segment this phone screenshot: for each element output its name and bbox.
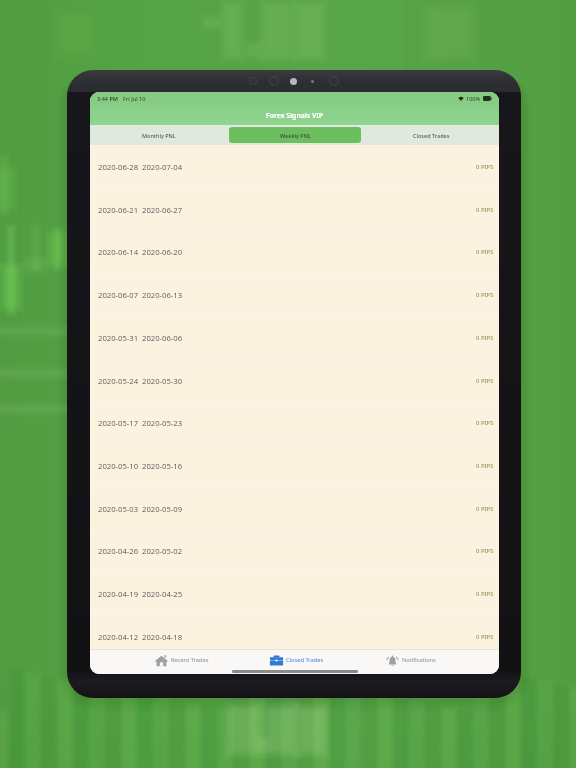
staticText: 2020-04-12 [98, 632, 139, 642]
staticText: 2020-05-09 [142, 504, 183, 514]
staticText: 2020-04-18 [142, 632, 183, 642]
button[interactable]: 2020-05-10 [90, 444, 499, 487]
staticText: 2020-06-07 [98, 290, 139, 300]
button[interactable]: Monthly PNL [92, 127, 225, 143]
button[interactable]: 2020-04-12 [90, 615, 499, 658]
staticText: 2020-05-24 [98, 376, 139, 386]
button[interactable]: Closed Trades [269, 649, 324, 671]
staticText: Fri Jul 10 [123, 95, 146, 102]
staticText: 2020-05-10 [98, 461, 139, 471]
other: Recent Trades [154, 653, 169, 668]
staticText: 2020-06-06 [142, 333, 183, 343]
staticText: 0 PIPS [476, 462, 494, 470]
staticText: Monthly PNL [142, 132, 176, 139]
staticText: 2020-05-31 [98, 333, 139, 343]
button[interactable]: Recent Trades [154, 649, 209, 671]
staticText: 0 PIPS [476, 633, 494, 641]
button[interactable]: 2020-05-03 [90, 487, 499, 530]
staticText: Notifications [402, 656, 436, 664]
staticText: 2020-07-04 [142, 162, 183, 172]
button[interactable]: Closed Trades [365, 127, 497, 143]
staticText: 2020-05-30 [142, 376, 183, 386]
button[interactable]: 2020-05-17 [90, 401, 499, 444]
button[interactable]: 2020-06-28 [90, 145, 499, 188]
staticText: Recent Trades [171, 656, 209, 664]
button[interactable]: 2020-06-14 [90, 230, 499, 273]
button[interactable]: 2020-04-19 [90, 572, 499, 615]
staticText: Forex Signals VIP [266, 111, 324, 120]
staticText: 2020-05-03 [98, 504, 139, 514]
button[interactable]: 2020-05-31 [90, 316, 499, 359]
other: Notifications [385, 653, 400, 668]
staticText: 100% [466, 95, 481, 102]
staticText: 2020-05-23 [142, 418, 183, 428]
button[interactable]: 2020-06-21 [90, 188, 499, 231]
staticText: 2020-04-19 [98, 589, 139, 599]
staticText: 2020-06-21 [98, 205, 139, 215]
staticText: 0 PIPS [476, 505, 494, 513]
staticText: 0 PIPS [476, 419, 494, 427]
staticText: Weekly PNL [280, 132, 311, 139]
staticText: 2020-06-28 [98, 162, 139, 172]
staticText: 2020-06-20 [142, 247, 183, 257]
staticText: 0 PIPS [476, 377, 494, 385]
staticText: 0 PIPS [476, 248, 494, 256]
staticText: Closed Trades [413, 132, 450, 139]
staticText: 2020-05-16 [142, 461, 183, 471]
other: Closed Trades [269, 653, 284, 668]
staticText: 2020-04-25 [142, 589, 183, 599]
button[interactable]: Weekly PNL [229, 127, 361, 143]
staticText: 3:44 PM [97, 95, 118, 102]
staticText: 0 PIPS [476, 590, 494, 598]
staticText: 0 PIPS [476, 547, 494, 555]
staticText: Closed Trades [286, 656, 324, 664]
staticText: 2020-04-26 [98, 546, 139, 556]
staticText: 2020-06-27 [142, 205, 183, 215]
staticText: 2020-06-14 [98, 247, 139, 257]
staticText: 0 PIPS [476, 291, 494, 299]
staticText: 0 PIPS [476, 163, 494, 171]
button[interactable]: 2020-05-24 [90, 359, 499, 402]
button[interactable]: 2020-06-07 [90, 273, 499, 316]
staticText: 0 PIPS [476, 206, 494, 214]
button[interactable]: Notifications [385, 649, 436, 671]
button[interactable]: 2020-04-26 [90, 529, 499, 572]
staticText: 2020-05-02 [142, 546, 183, 556]
staticText: 2020-06-13 [142, 290, 183, 300]
staticText: 0 PIPS [476, 334, 494, 342]
staticText: 2020-05-17 [98, 418, 139, 428]
